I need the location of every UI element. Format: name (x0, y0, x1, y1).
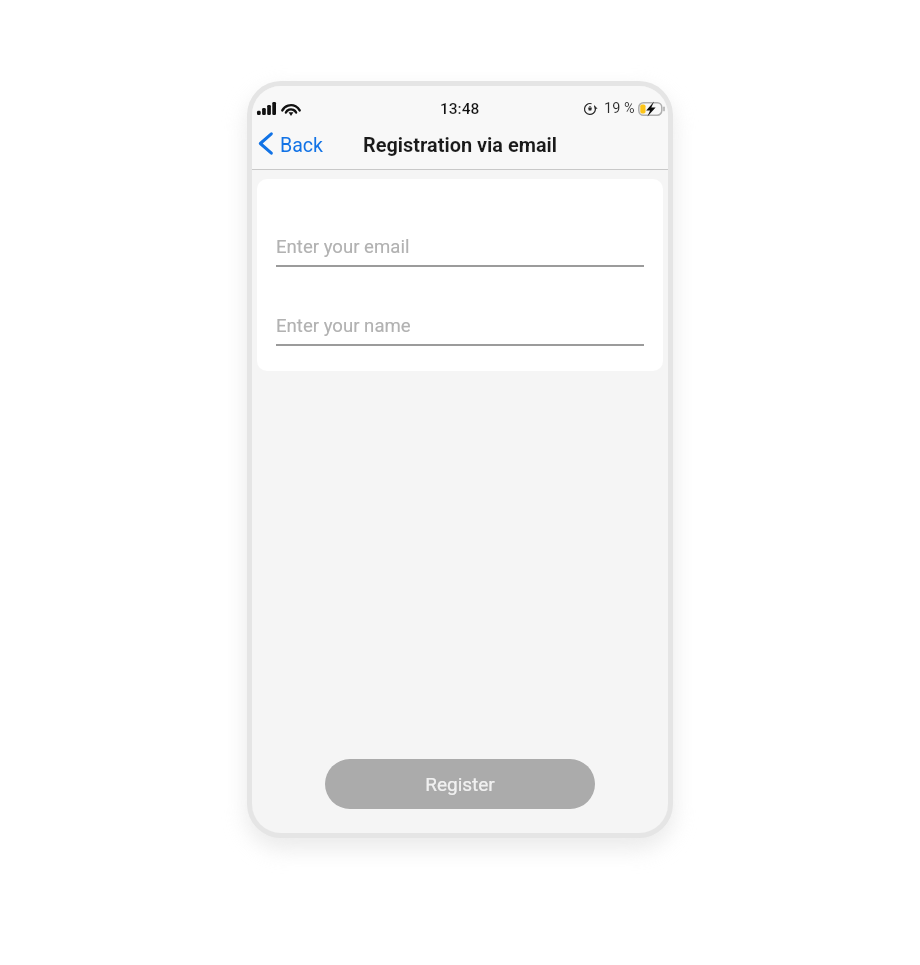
other: Wi-Fi (282, 103, 300, 115)
staticText: Register (425, 773, 495, 795)
staticText: 19 % (604, 100, 635, 117)
other: Back (259, 133, 272, 154)
button[interactable]: Back (252, 127, 332, 160)
button[interactable]: Register (325, 759, 595, 809)
button[interactable]: Enter your name (276, 315, 644, 346)
button[interactable]: Enter your email (276, 236, 644, 267)
staticText: Enter your email (276, 236, 410, 258)
other: Cellular signal (257, 102, 276, 115)
staticText: 13:48 (440, 100, 480, 118)
staticText: Enter your name (276, 315, 411, 337)
other: Rotation lock (584, 103, 597, 115)
staticText: Registration via email (363, 134, 558, 157)
staticText: Back (280, 134, 324, 157)
other: Battery charging, 19 percent (638, 102, 664, 116)
